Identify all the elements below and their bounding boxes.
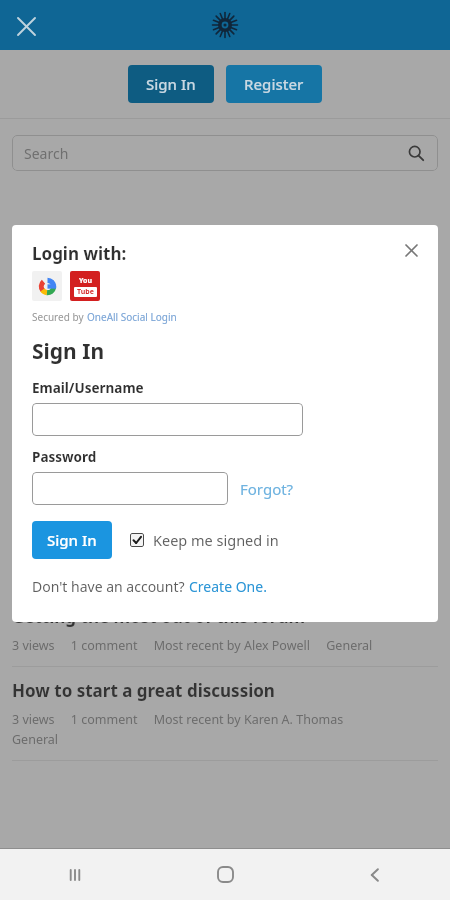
button[interactable]: Sign In: [128, 65, 214, 103]
button[interactable]: Home logo: [210, 10, 240, 40]
staticText: Keep me signed in: [153, 530, 279, 550]
button[interactable]: Close: [8, 8, 44, 44]
button[interactable]: Close dialog: [396, 235, 426, 265]
staticText: OneAll Social Login: [87, 310, 177, 324]
staticText: Secured by: [32, 310, 87, 324]
button[interactable]: Register: [226, 65, 322, 103]
button[interactable]: OneAll Social Login: [87, 310, 177, 324]
button[interactable]: Home: [150, 849, 300, 900]
staticText: 3 views 1 comment Most recent by Karen A…: [12, 711, 344, 728]
staticText: Create One.: [189, 577, 267, 596]
button[interactable]: Keep me signed in: [130, 530, 279, 550]
button[interactable]: [32, 472, 228, 505]
staticText: Email/Username: [32, 379, 144, 397]
staticText: Don't have an account?: [32, 577, 189, 596]
staticText: You: [79, 276, 92, 286]
button[interactable]: Sign in with YouTube: [70, 271, 100, 301]
button[interactable]: How to start a great discussion: [0, 667, 450, 760]
staticText: 3 views 1 comment Most recent by Alex Po…: [12, 637, 373, 654]
staticText: Getting the most out of this forum: [12, 605, 306, 628]
staticText: General: [12, 731, 59, 748]
button[interactable]: Create One.: [189, 577, 267, 596]
staticText: Forgot?: [240, 479, 294, 499]
staticText: Login with:: [32, 242, 127, 265]
button[interactable]: Sign in with Google: [32, 271, 62, 301]
staticText: Sign In: [47, 530, 97, 550]
staticText: Sign In: [146, 74, 196, 94]
button[interactable]: Search: [12, 135, 438, 171]
button[interactable]: Sign In: [32, 521, 112, 559]
button[interactable]: Forgot?: [240, 479, 294, 499]
staticText: How to start a great discussion: [12, 679, 275, 702]
button[interactable]: Recent apps: [0, 849, 150, 900]
staticText: Register: [244, 74, 304, 94]
staticText: Search: [24, 144, 69, 163]
staticText: Tube: [77, 287, 94, 297]
button[interactable]: Getting the most out of this forum: [0, 593, 450, 666]
button[interactable]: [32, 403, 303, 436]
button[interactable]: Back: [300, 849, 450, 900]
staticText: Password: [32, 448, 97, 466]
staticText: Sign In: [32, 337, 105, 366]
